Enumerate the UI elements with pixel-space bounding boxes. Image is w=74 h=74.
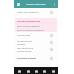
staticText: Physical Exam xyxy=(17,34,31,37)
staticText: Symptom Results xyxy=(17,57,36,60)
button[interactable]: Tab 5 xyxy=(50,68,56,74)
staticText: This is the likely diagnosis xyxy=(17,25,40,28)
button[interactable]: Open Physical Exam xyxy=(49,33,54,38)
button[interactable]: More options xyxy=(51,1,57,7)
button[interactable]: Lab Results and xyxy=(14,39,58,46)
button[interactable]: Physical Exam xyxy=(14,32,58,39)
staticText: Imaging xyxy=(17,43,25,46)
button[interactable]: Tab 3 xyxy=(33,68,39,74)
staticText: ACUTE PANCREATITIS xyxy=(17,20,40,23)
button[interactable]: Symptom Results xyxy=(14,55,58,61)
button[interactable]: Tab 1 xyxy=(16,68,22,74)
staticText: Medical Diagnosis xyxy=(26,3,46,6)
button[interactable]: Tab 4 xyxy=(41,68,47,74)
staticText: given the reported symptoms xyxy=(17,29,44,32)
staticText: Past Medical and xyxy=(17,47,33,50)
button[interactable]: Past Medical and xyxy=(14,46,58,53)
staticText: What's your Diagnosis xyxy=(17,11,38,14)
button[interactable]: Open History xyxy=(49,47,54,52)
button[interactable]: Expand xyxy=(49,56,54,61)
button[interactable]: Open Lab Results xyxy=(49,40,54,45)
staticText: Surgical History xyxy=(17,50,32,53)
button[interactable]: Tab 2 xyxy=(25,68,31,74)
staticText: Lab Results and xyxy=(17,40,32,43)
button[interactable]: ACUTE PANCREATITIS xyxy=(15,18,57,32)
button[interactable]: Help xyxy=(49,10,54,15)
button[interactable]: What's your Diagnosis xyxy=(14,9,58,16)
button[interactable]: Navigate up xyxy=(15,1,21,7)
